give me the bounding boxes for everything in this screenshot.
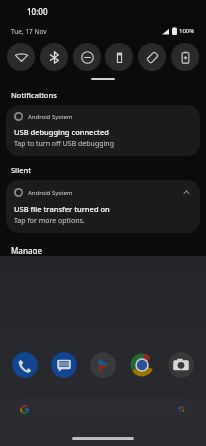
button[interactable]: Chrome [129, 352, 155, 378]
button[interactable]: Manage [0, 243, 54, 256]
staticText: 10:00 [27, 6, 48, 17]
button[interactable]: Search [12, 398, 194, 420]
button[interactable]: Android System [6, 105, 200, 156]
staticText: Tap to turn off USB debugging [14, 139, 114, 149]
staticText: Android System [28, 113, 73, 121]
button[interactable]: Camera [168, 352, 194, 378]
staticText: Tap for more options. [14, 216, 85, 226]
staticText: Android System [28, 189, 73, 197]
button[interactable]: Phone [12, 352, 38, 378]
button[interactable]: Flashlight [105, 43, 133, 71]
staticText: Manage [11, 245, 43, 254]
staticText: USB debugging connected [14, 127, 109, 137]
staticText: Tue, 17 Nov [11, 27, 47, 36]
button[interactable]: Android System [6, 180, 200, 233]
button[interactable]: Battery Saver [171, 43, 199, 71]
button[interactable]: Do Not Disturb [73, 43, 101, 71]
button[interactable]: Play Store [90, 352, 116, 378]
staticText: 100% [179, 27, 195, 35]
button[interactable]: Wi-Fi [7, 43, 35, 71]
button[interactable]: Bluetooth [40, 43, 68, 71]
button[interactable]: Messages [51, 352, 77, 378]
staticText: Silent [11, 165, 32, 175]
staticText: USB file transfer turned on [14, 204, 110, 214]
staticText: Notifications [11, 90, 57, 100]
button[interactable]: Collapse [181, 187, 192, 198]
button[interactable]: Auto rotate [138, 43, 166, 71]
